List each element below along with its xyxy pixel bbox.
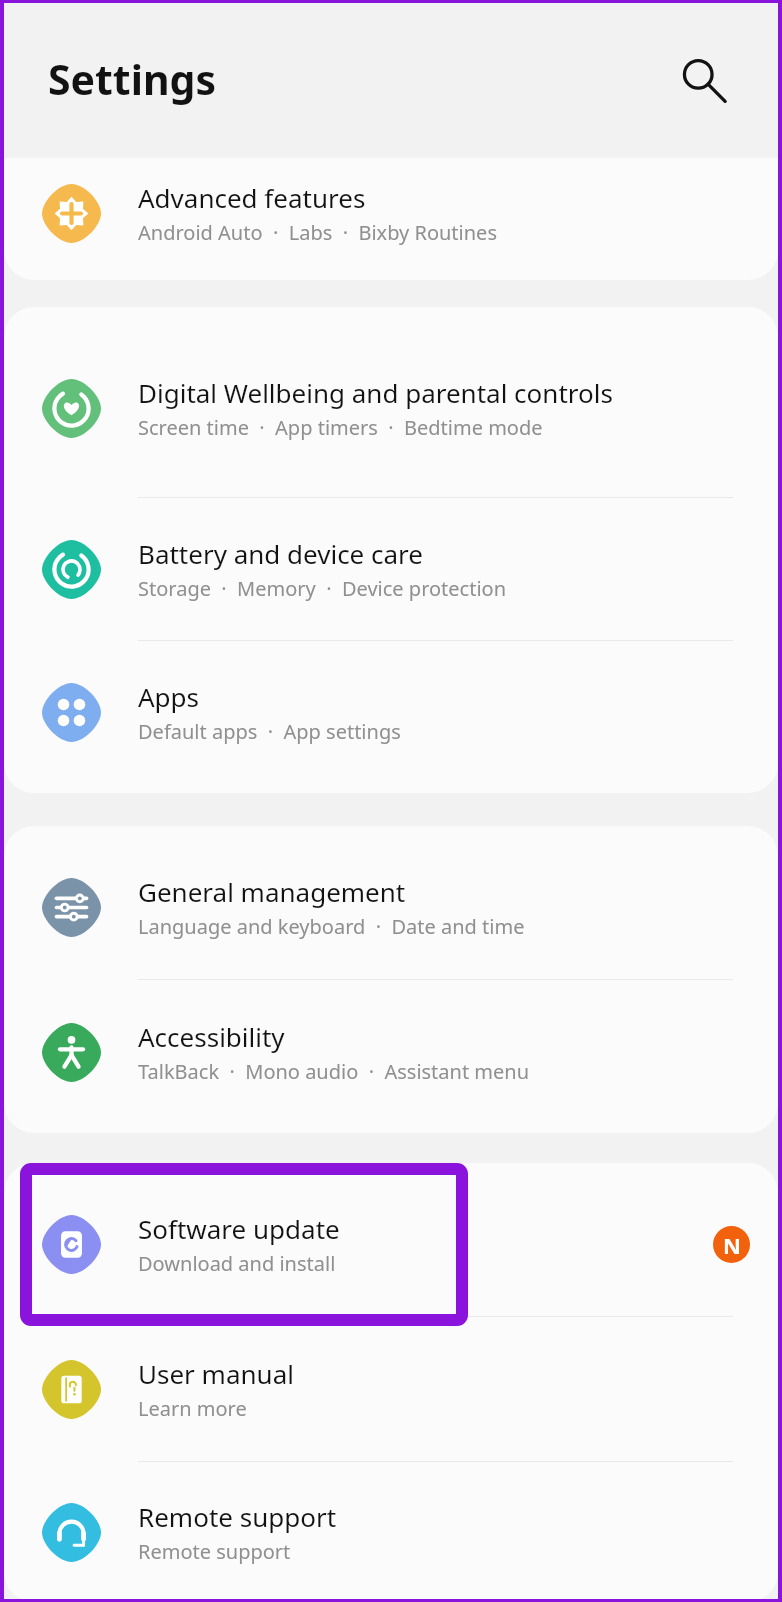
staticText: Learn more (138, 1395, 247, 1422)
staticText: Screen time · App timers · Bedtime mode (138, 414, 543, 441)
staticText: Language and keyboard · Date and time (138, 913, 525, 940)
button[interactable]: Remote support (4, 1462, 778, 1602)
staticText: Battery and device care (138, 536, 423, 571)
staticText: Advanced features (138, 180, 366, 215)
staticText: Storage · Memory · Device protection (138, 575, 507, 602)
button[interactable]: Advanced features (4, 158, 778, 274)
staticText: Android Auto · Labs · Bixby Routines (138, 219, 497, 246)
staticText: General management (138, 874, 406, 909)
button[interactable]: Search (670, 48, 732, 110)
button[interactable]: Accessibility (4, 980, 778, 1124)
staticText: Remote support (138, 1499, 337, 1534)
staticText: Software update (138, 1211, 340, 1246)
staticText: Apps (138, 679, 200, 714)
button[interactable]: Battery and device care (4, 498, 778, 640)
staticText: Settings (48, 51, 217, 107)
staticText: TalkBack · Mono audio · Assistant menu (138, 1058, 530, 1085)
staticText: Remote support (138, 1538, 291, 1565)
button[interactable]: Software update (4, 1172, 778, 1316)
staticText: N (723, 1230, 741, 1260)
staticText: Default apps · App settings (138, 718, 401, 745)
staticText: User manual (138, 1356, 294, 1391)
staticText: Download and install (138, 1250, 336, 1277)
button[interactable]: Digital Wellbeing and parental controls (4, 319, 778, 497)
button[interactable]: User manual (4, 1317, 778, 1461)
staticText: Digital Wellbeing and parental controls (138, 375, 613, 410)
staticText: Accessibility (138, 1019, 285, 1054)
button[interactable]: General management (4, 835, 778, 979)
button[interactable]: Apps (4, 641, 778, 783)
